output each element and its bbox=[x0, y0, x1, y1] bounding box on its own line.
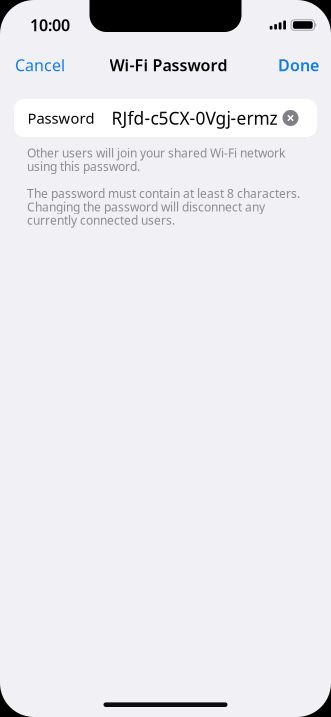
staticText: RJfd-c5CX-0Vgj-ermz bbox=[111, 106, 277, 129]
staticText: The password must contain at least 8 cha… bbox=[27, 185, 300, 228]
staticText: Other users will join your shared Wi-Fi … bbox=[27, 145, 285, 174]
staticText: Password bbox=[27, 108, 94, 128]
button[interactable]: Cancel bbox=[0, 47, 75, 83]
staticText: Cancel bbox=[15, 54, 65, 76]
button[interactable]: Done bbox=[268, 47, 331, 83]
button[interactable]: Clear text bbox=[282, 110, 298, 126]
staticText: Wi-Fi Password bbox=[109, 54, 227, 76]
staticText: Done bbox=[278, 54, 319, 76]
staticText: 10:00 bbox=[30, 14, 70, 36]
